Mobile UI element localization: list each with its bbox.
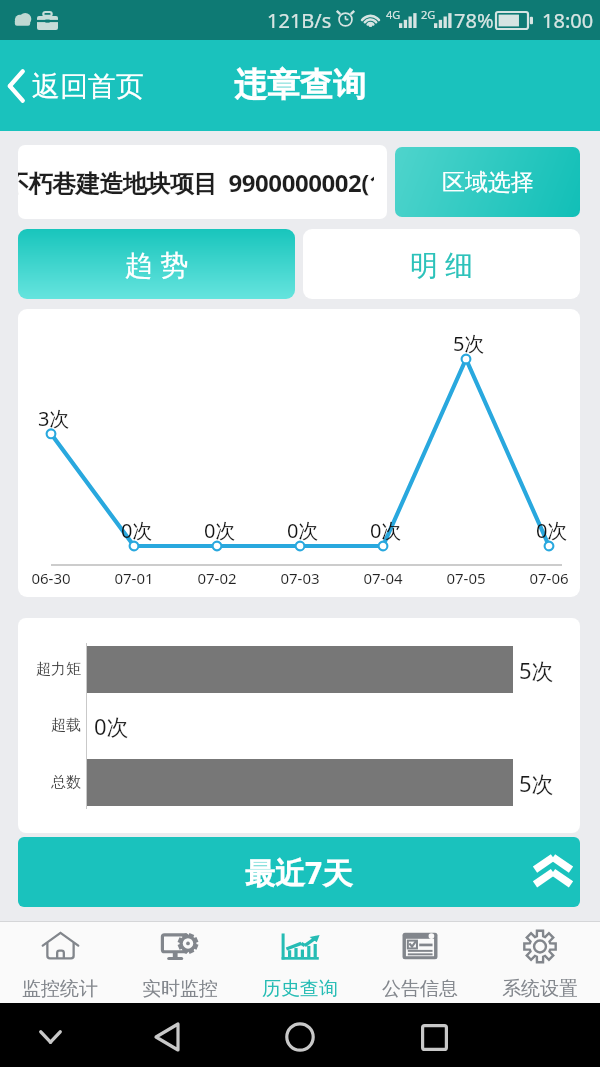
button[interactable]: 历史查询 — [240, 922, 360, 1003]
staticText: 返回首页 — [32, 69, 144, 104]
button[interactable]: 监控统计 — [0, 922, 120, 1003]
staticText: 趋 势 — [125, 245, 189, 283]
staticText: 系统设置 — [502, 977, 578, 1001]
staticText: 0次 — [370, 517, 402, 544]
staticText: 4G — [386, 7, 401, 22]
staticText: 监控统计 — [22, 977, 98, 1001]
button[interactable]: Recents — [410, 1011, 458, 1063]
staticText: 公告信息 — [382, 977, 458, 1001]
staticText: 06-30 — [31, 568, 71, 588]
staticText: 5次 — [453, 330, 485, 357]
staticText: 实时监控 — [142, 977, 218, 1001]
staticText: 07-03 — [280, 568, 320, 588]
staticText: 0次 — [536, 517, 568, 544]
staticText: 不朽巷建造地块项目 9900000002(1号楼) — [18, 166, 374, 199]
staticText: 总数 — [51, 773, 81, 792]
staticText: 07-01 — [114, 568, 154, 588]
button[interactable]: Back — [143, 1011, 191, 1063]
button[interactable]: 返回首页 — [0, 60, 152, 112]
staticText: 07-04 — [363, 568, 403, 588]
button[interactable]: Home — [276, 1011, 324, 1063]
staticText: 18:00 — [542, 7, 594, 34]
staticText: 07-05 — [446, 568, 486, 588]
staticText: 07-02 — [197, 568, 237, 588]
staticText: 5次 — [519, 655, 554, 685]
button[interactable]: 系统设置 — [480, 922, 600, 1003]
staticText: 明 细 — [410, 245, 474, 283]
button[interactable]: 不朽巷建造地块项目 9900000002(1号楼) — [18, 145, 387, 219]
staticText: 07-06 — [529, 568, 569, 588]
staticText: 超力矩 — [36, 660, 81, 679]
staticText: 0次 — [204, 517, 236, 544]
staticText: 121B/s — [267, 7, 332, 34]
button[interactable]: Hide keyboard — [26, 1011, 74, 1063]
staticText: 违章查询 — [234, 64, 366, 106]
button[interactable]: 公告信息 — [360, 922, 480, 1003]
staticText: 3次 — [38, 405, 70, 432]
staticText: 0次 — [94, 711, 129, 741]
button[interactable]: 实时监控 — [120, 922, 240, 1003]
button[interactable]: 最近7天 — [18, 837, 580, 907]
button[interactable]: 趋 势 — [18, 229, 295, 299]
staticText: 78% — [454, 7, 494, 34]
staticText: 历史查询 — [262, 977, 338, 1001]
staticText: 5次 — [519, 768, 554, 798]
button[interactable]: 区域选择 — [395, 147, 580, 217]
staticText: 区域选择 — [442, 168, 534, 197]
other: Collapse — [533, 849, 573, 895]
staticText: 0次 — [287, 517, 319, 544]
staticText: 0次 — [121, 517, 153, 544]
button[interactable]: 明 细 — [303, 229, 580, 299]
staticText: 2G — [421, 7, 436, 22]
staticText: 最近7天 — [245, 852, 353, 893]
staticText: 超载 — [51, 716, 81, 735]
